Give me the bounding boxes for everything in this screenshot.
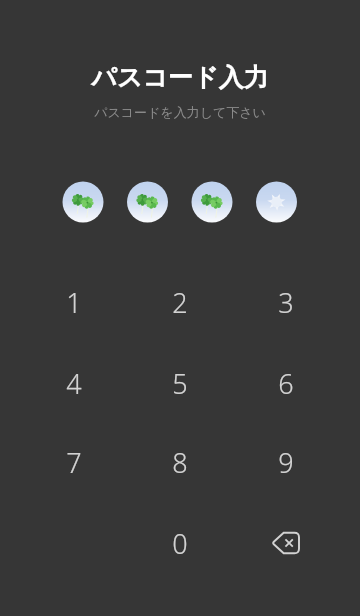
button[interactable]: 8 — [132, 425, 228, 499]
staticText: 4 — [66, 365, 82, 402]
staticText: 6 — [278, 365, 294, 402]
button[interactable]: 0 — [132, 506, 228, 580]
button[interactable]: 3 — [238, 265, 334, 339]
staticText: 2 — [172, 284, 188, 321]
button[interactable]: 4 — [26, 346, 122, 420]
staticText: 3 — [278, 284, 294, 321]
staticText: 9 — [278, 444, 294, 481]
button[interactable]: 9 — [238, 425, 334, 499]
staticText: 5 — [172, 365, 188, 402]
staticText: 7 — [66, 444, 82, 481]
button[interactable]: 7 — [26, 425, 122, 499]
button[interactable]: 6 — [238, 346, 334, 420]
staticText: パスコードを入力して下さい — [94, 104, 266, 120]
staticText: パスコード入力 — [91, 62, 269, 93]
button[interactable]: 5 — [132, 346, 228, 420]
button[interactable]: 1 — [26, 265, 122, 339]
staticText: 0 — [172, 525, 188, 562]
staticText: 1 — [66, 284, 82, 321]
button[interactable]: 2 — [132, 265, 228, 339]
button[interactable]: Delete — [238, 506, 334, 580]
staticText: 8 — [172, 444, 188, 481]
